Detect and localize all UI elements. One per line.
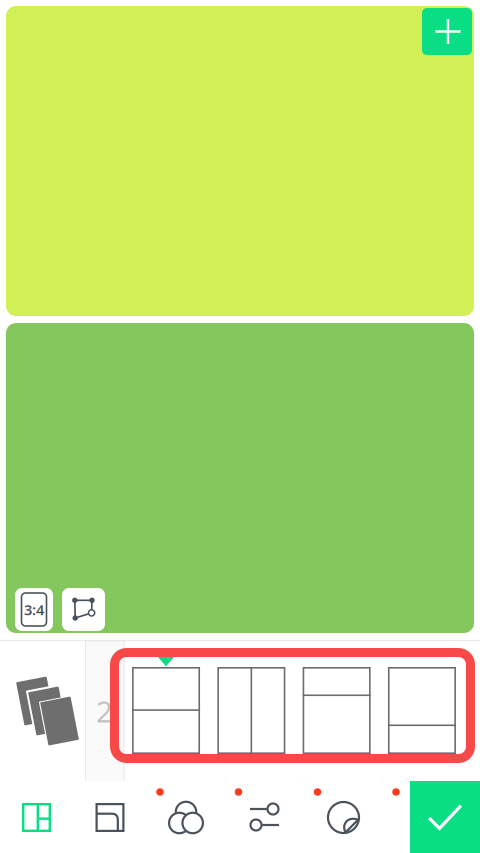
staticText: 3:4 — [24, 600, 44, 619]
button[interactable]: Filters — [147, 781, 225, 853]
button[interactable]: Choose photos — [0, 641, 85, 781]
button[interactable]: Free transform — [62, 588, 105, 631]
staticText: 2 — [96, 691, 113, 730]
button[interactable]: Border — [71, 781, 149, 853]
button[interactable]: Adjust — [226, 781, 303, 853]
button[interactable]: Stickers — [305, 781, 382, 853]
button[interactable]: Small bottom layout — [388, 667, 456, 754]
button[interactable]: Small top layout — [303, 667, 371, 754]
button[interactable]: Text — [383, 781, 461, 853]
button[interactable]: Layouts — [0, 781, 75, 853]
button[interactable]: Add photo — [422, 8, 472, 55]
button[interactable]: Two rows layout — [132, 667, 200, 754]
button[interactable]: Aspect ratio 3 to 4 — [15, 588, 53, 631]
button[interactable]: Done — [410, 781, 480, 853]
button[interactable]: Two columns layout — [217, 667, 285, 754]
